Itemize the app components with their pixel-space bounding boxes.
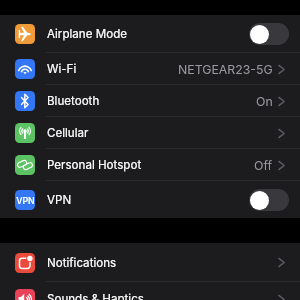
staticText: Airplane Mode xyxy=(47,27,127,41)
staticText: Notifications xyxy=(47,256,117,270)
staticText: VPN xyxy=(47,193,72,207)
button[interactable]: Notifications xyxy=(0,243,300,282)
staticText: On xyxy=(256,94,273,109)
button[interactable]: Personal Hotspot xyxy=(0,149,300,181)
staticText: Off xyxy=(254,158,273,173)
button[interactable]: Sounds & Haptics xyxy=(0,282,300,300)
staticText: NETGEAR23-5G xyxy=(178,62,273,77)
button[interactable]: Toggle xyxy=(249,189,289,211)
button[interactable]: Airplane Mode xyxy=(0,15,300,53)
button[interactable]: Toggle xyxy=(249,23,289,45)
button[interactable]: Bluetooth xyxy=(0,85,300,117)
staticText: Sounds & Haptics xyxy=(47,292,144,300)
staticText: Wi-Fi xyxy=(47,62,77,76)
staticText: VPN xyxy=(16,195,35,206)
button[interactable]: Wi-Fi xyxy=(0,53,300,85)
staticText: Bluetooth xyxy=(47,94,100,108)
button[interactable]: Cellular xyxy=(0,117,300,149)
staticText: Personal Hotspot xyxy=(47,158,142,172)
button[interactable]: VPN xyxy=(0,181,300,218)
staticText: Cellular xyxy=(47,126,89,140)
